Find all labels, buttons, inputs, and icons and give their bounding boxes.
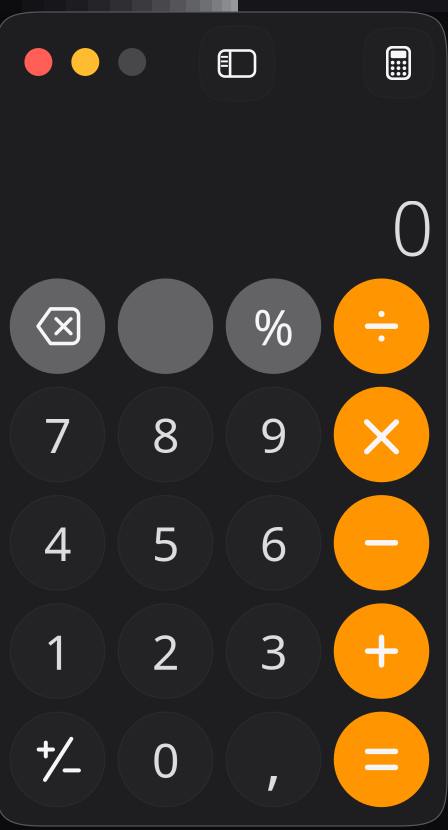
button[interactable]: 7 [10, 387, 105, 482]
button[interactable]: Clear [118, 278, 213, 374]
staticText: 5 [152, 511, 179, 575]
staticText: 4 [44, 511, 71, 575]
button[interactable]: 2 [118, 603, 213, 699]
button[interactable]: Show Sidebar [199, 25, 275, 101]
staticText: 1 [44, 619, 71, 683]
button[interactable]: 5 [118, 495, 213, 590]
button[interactable]: Calculator Mode [363, 27, 434, 98]
staticText: 0 [152, 727, 179, 791]
button[interactable]: 1 [10, 603, 105, 699]
staticText: 8 [152, 403, 179, 466]
button[interactable]: Zoom [118, 48, 146, 76]
button[interactable]: 4 [10, 495, 105, 590]
staticText: % [253, 293, 294, 359]
button[interactable]: Close [24, 48, 52, 76]
staticText: 2 [152, 619, 179, 683]
button[interactable]: 9 [226, 387, 321, 482]
button[interactable]: 6 [226, 495, 321, 590]
button[interactable]: Percent [226, 278, 321, 374]
button[interactable]: Minimise [71, 48, 99, 76]
staticText: 6 [260, 511, 287, 575]
staticText: 0 [391, 177, 434, 276]
button[interactable]: Toggle Sign [10, 712, 105, 807]
button[interactable]: Delete [10, 278, 105, 374]
button[interactable]: Add [334, 603, 429, 699]
staticText: 9 [260, 403, 287, 466]
button[interactable]: Subtract [334, 495, 429, 590]
staticText: 7 [44, 403, 71, 466]
button[interactable]: 3 [226, 603, 321, 699]
button[interactable]: Divide [334, 278, 429, 374]
staticText: , [265, 720, 281, 799]
button[interactable]: Decimal Separator [226, 712, 321, 807]
staticText: 3 [260, 619, 287, 683]
button[interactable]: 0 [118, 712, 213, 807]
button[interactable]: Equals [334, 712, 429, 807]
button[interactable]: 8 [118, 387, 213, 482]
button[interactable]: Multiply [334, 387, 429, 482]
